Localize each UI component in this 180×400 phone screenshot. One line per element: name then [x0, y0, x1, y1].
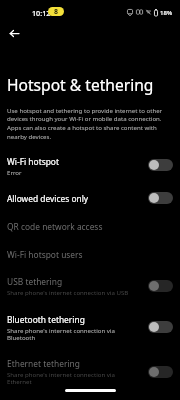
staticText: 18% [160, 8, 173, 16]
staticText: Wi-Fi hotspot users [7, 249, 83, 260]
button[interactable]: Allowed devices only [0, 188, 180, 207]
button[interactable]: USB tethering [0, 271, 180, 301]
button[interactable]: Ethernet tethering [0, 353, 180, 390]
staticText: Wi-Fi hotspot [7, 156, 59, 167]
button[interactable]: Back [3, 22, 25, 44]
staticText: USB tethering [7, 276, 63, 287]
button[interactable]: Ethernet tethering toggle [148, 366, 173, 378]
staticText: QR code network access [7, 221, 103, 232]
staticText: Share phone's internet connection via Et… [7, 370, 139, 386]
staticText: Use hotspot and tethering to provide int… [7, 106, 171, 141]
staticText: Share phone's internet connection via Bl… [7, 326, 139, 342]
staticText: Hotspot & tethering [7, 74, 154, 95]
button[interactable]: Bluetooth tethering toggle [148, 321, 173, 333]
staticText: Share phone's internet connection via US… [7, 288, 129, 296]
button[interactable]: QR code network access [0, 216, 180, 235]
button[interactable]: Allowed devices only toggle [148, 192, 173, 204]
staticText: Allowed devices only [7, 193, 89, 204]
staticText: 8 [54, 7, 59, 16]
button[interactable]: Wi-Fi hotspot toggle [148, 159, 173, 171]
staticText: Ethernet tethering [7, 358, 80, 369]
button[interactable]: Bluetooth tethering [0, 309, 180, 344]
button[interactable]: USB tethering toggle [148, 280, 173, 292]
staticText: 10:12 [32, 8, 51, 18]
staticText: Error [7, 168, 22, 176]
button[interactable]: Wi-Fi hotspot users [0, 244, 180, 263]
button[interactable]: Wi-Fi hotspot [0, 151, 180, 179]
staticText: Bluetooth tethering [7, 314, 85, 325]
